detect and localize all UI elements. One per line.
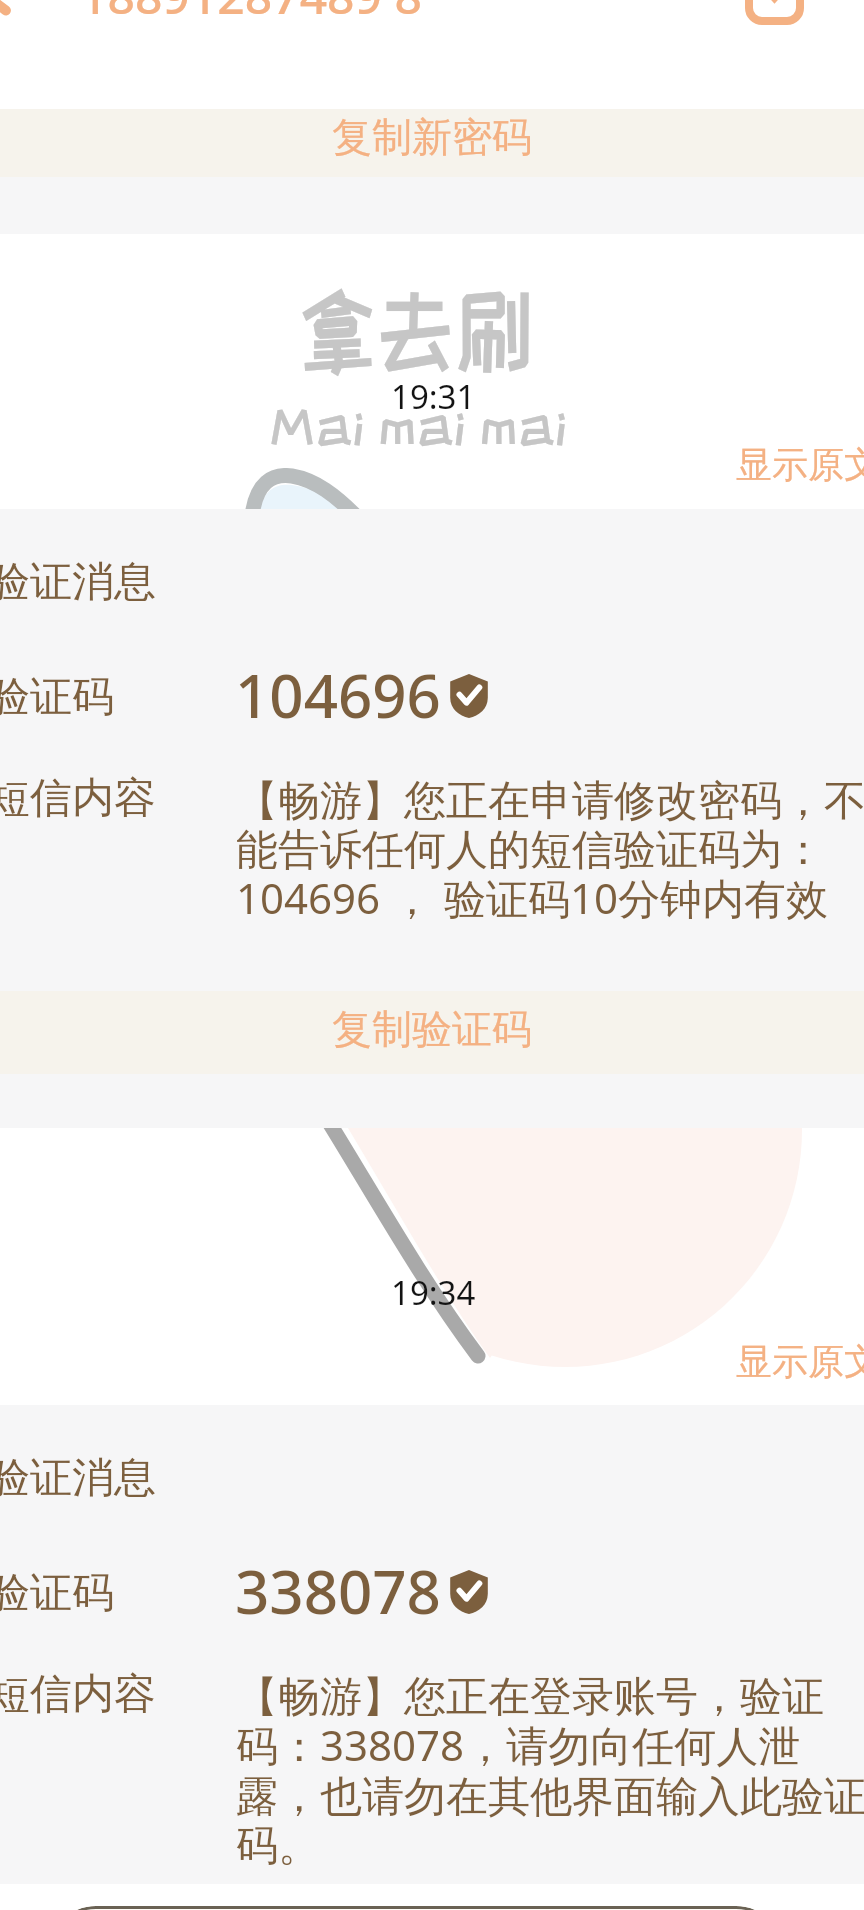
staticText: 验证码 bbox=[0, 1567, 114, 1620]
staticText: 显示原文 bbox=[736, 1339, 864, 1384]
staticText: 拿去刷 bbox=[298, 280, 533, 379]
other: Back bbox=[0, 0, 16, 15]
staticText: 19:31 bbox=[391, 374, 476, 419]
staticText: 【畅游】您正在申请修改密码，不 能告诉任何人的短信验证码为： 104696 ， … bbox=[236, 778, 864, 927]
staticText: 短信内容 bbox=[0, 772, 156, 825]
staticText: 复制验证码 bbox=[332, 1004, 532, 1054]
staticText: 复制新密码 bbox=[332, 112, 532, 162]
button[interactable]: 复制新密码 bbox=[0, 109, 864, 177]
staticText: 短信内容 bbox=[0, 1668, 156, 1721]
staticText: 显示原文 bbox=[736, 442, 864, 487]
staticText: 19:34 bbox=[391, 1270, 476, 1315]
staticText: Mai mai mai bbox=[269, 398, 568, 452]
staticText: 验证消息 bbox=[0, 556, 156, 609]
button[interactable]: 复制验证码 bbox=[0, 991, 864, 1074]
staticText: 104696 bbox=[235, 654, 441, 736]
staticText: 验证码 bbox=[0, 671, 114, 724]
staticText: 338078 bbox=[235, 1550, 441, 1632]
staticText: 验证消息 bbox=[0, 1452, 156, 1505]
other: Download bbox=[745, 0, 804, 25]
staticText: 【畅游】您正在登录账号，验证 码：338078，请勿向任何人泄 露，也请勿在其他… bbox=[236, 1674, 864, 1872]
button[interactable] bbox=[48, 1906, 784, 1910]
button[interactable]: 显示原文 bbox=[736, 442, 864, 487]
button[interactable]: 显示原文 bbox=[736, 1339, 864, 1384]
staticText: 18891287489 8 bbox=[80, 0, 422, 28]
